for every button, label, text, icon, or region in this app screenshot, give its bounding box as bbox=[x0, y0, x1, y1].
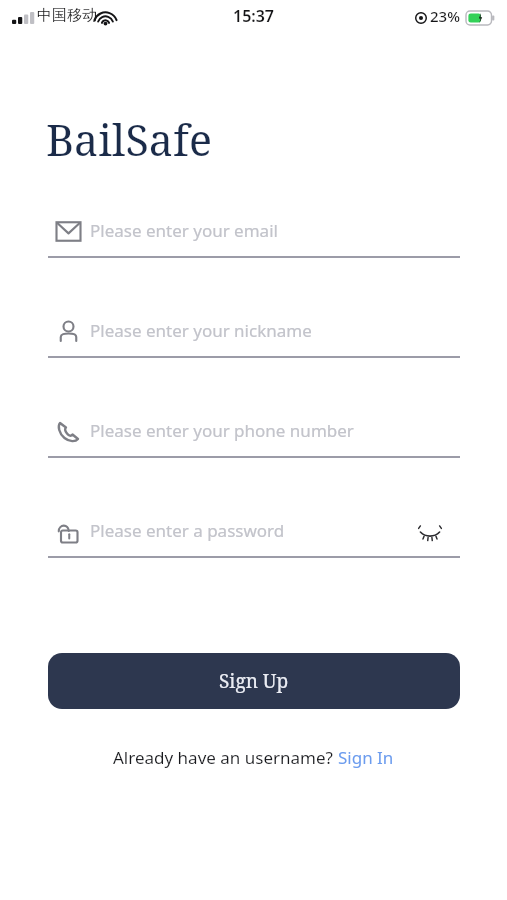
button[interactable]: Sign Up bbox=[48, 653, 460, 709]
staticText: 中国移动 bbox=[37, 6, 97, 25]
staticText: 23% bbox=[430, 6, 460, 26]
button[interactable]: Sign In bbox=[338, 746, 394, 769]
staticText: Please enter your email bbox=[90, 219, 278, 242]
button[interactable]: Please enter your nickname bbox=[48, 306, 460, 356]
staticText: 15:37 bbox=[233, 5, 275, 27]
staticText: Sign Up bbox=[219, 668, 289, 694]
staticText: BailSafe bbox=[46, 110, 212, 169]
staticText: Please enter your phone number bbox=[90, 419, 354, 442]
staticText: Sign In bbox=[338, 746, 394, 769]
button[interactable]: Show password bbox=[414, 517, 446, 549]
staticText: Please enter a password bbox=[90, 519, 285, 542]
button[interactable]: Please enter your email bbox=[48, 206, 460, 256]
button[interactable]: Please enter a password bbox=[48, 506, 460, 556]
staticText: Already have an username? bbox=[113, 746, 338, 769]
button[interactable]: Please enter your phone number bbox=[48, 406, 460, 456]
staticText: Please enter your nickname bbox=[90, 319, 312, 342]
